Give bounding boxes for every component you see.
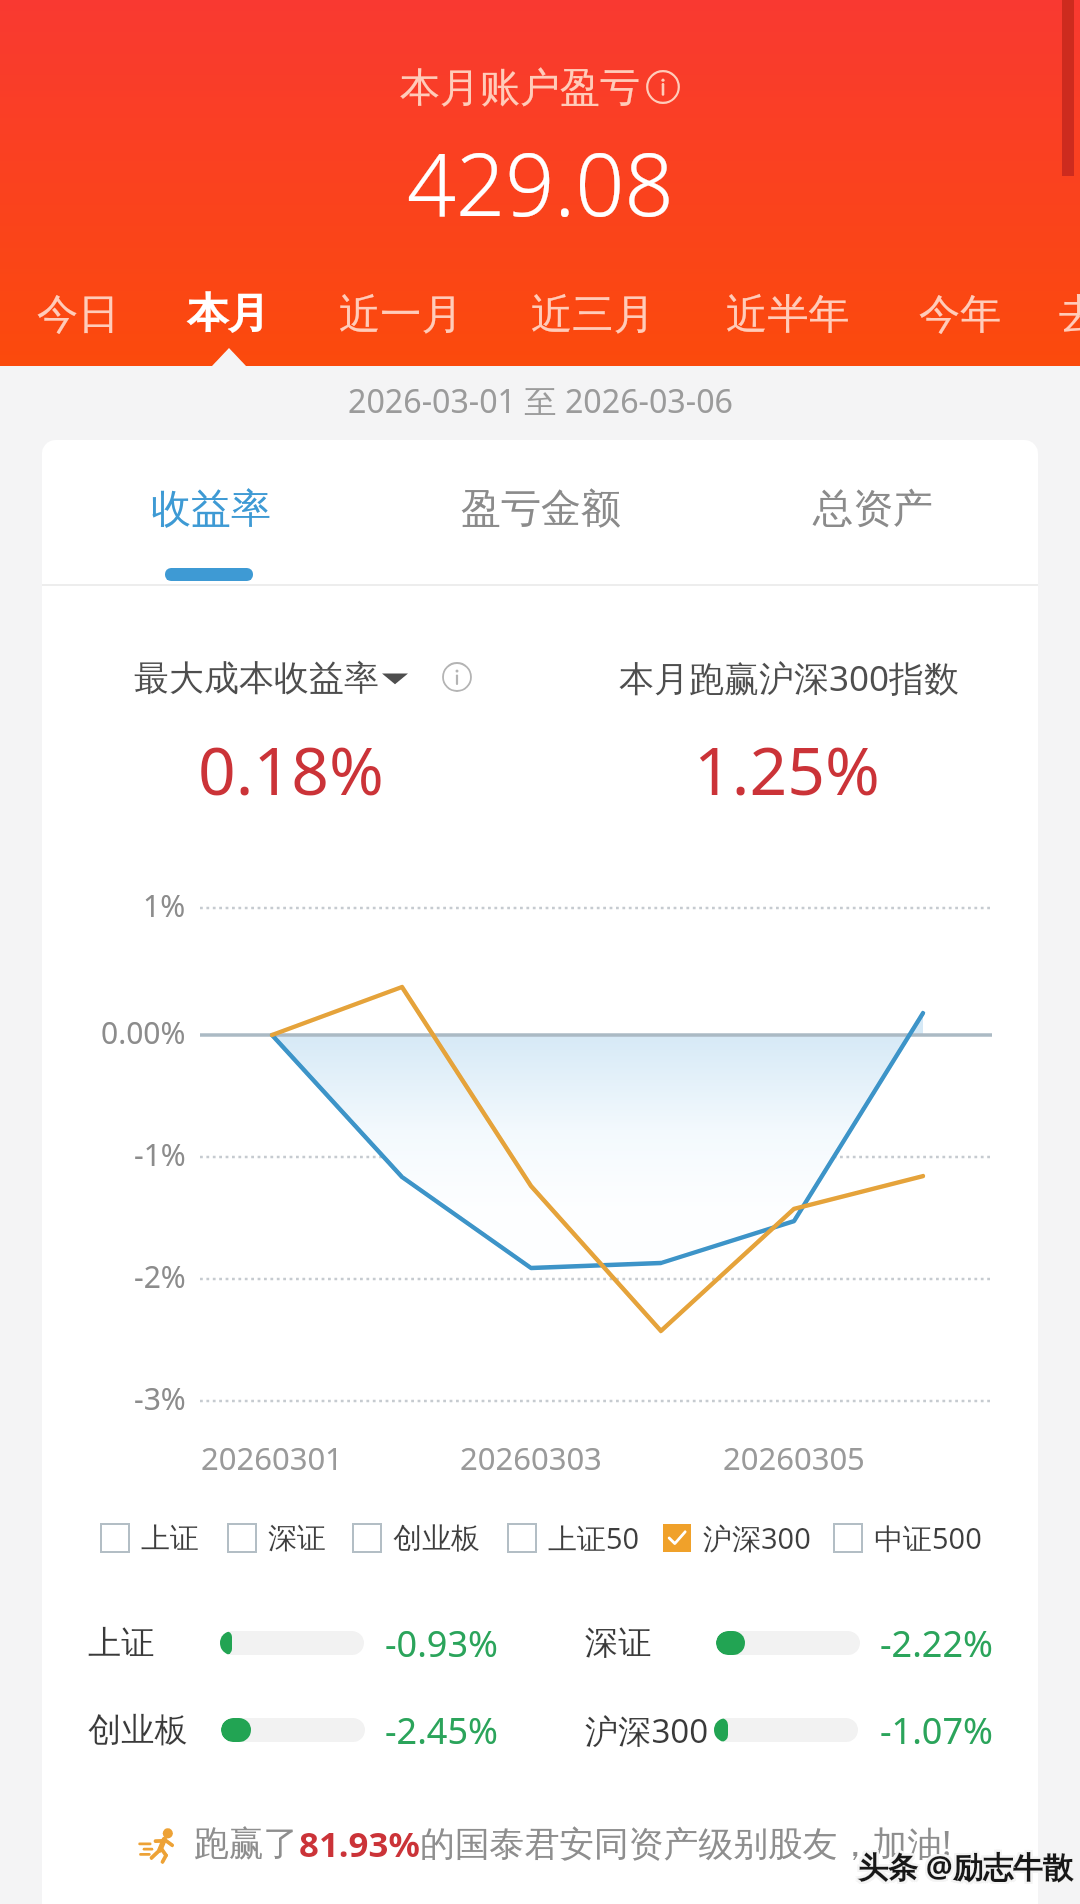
staticText: 上证: [141, 1520, 199, 1557]
button[interactable]: [80, 1607, 506, 1679]
staticText: 2026-03-01 至 2026-03-06: [348, 379, 733, 423]
button[interactable]: 深证: [228, 1508, 326, 1568]
staticText: 本月: [187, 288, 269, 340]
staticText: 最大成本收益率: [134, 656, 379, 700]
staticText: 20260301: [201, 1437, 343, 1479]
staticText: 1.25%: [694, 724, 880, 800]
button[interactable]: 上证: [101, 1508, 199, 1568]
staticText: 今日: [37, 288, 120, 340]
button[interactable]: 沪深300: [663, 1508, 811, 1568]
staticText: -2.22%: [880, 1619, 993, 1668]
staticText: 近一月: [339, 288, 463, 340]
staticText: 1%: [143, 885, 186, 926]
staticText: 头条 @励志牛散: [856, 1846, 1071, 1887]
button[interactable]: 0.18%: [171, 724, 411, 800]
staticText: -2%: [134, 1256, 186, 1297]
staticText: 今年: [919, 288, 1002, 340]
staticText: 深证: [585, 1622, 652, 1664]
button[interactable]: [577, 1694, 1001, 1766]
button[interactable]: 近半年: [714, 270, 862, 358]
button[interactable]: 盈亏金额: [431, 440, 651, 576]
button[interactable]: 中证500: [834, 1508, 982, 1568]
staticText: 头条 @励志牛散: [858, 1844, 1073, 1885]
staticText: 创业板: [88, 1709, 188, 1751]
staticText: 20260305: [723, 1437, 865, 1479]
staticText: -1%: [134, 1134, 186, 1175]
staticText: -0.93%: [385, 1619, 498, 1668]
button[interactable]: [577, 1607, 1001, 1679]
staticText: 20260303: [460, 1437, 602, 1479]
staticText: 去: [1059, 288, 1080, 340]
staticText: 本月账户盈亏: [400, 62, 640, 112]
staticText: 0.18%: [198, 724, 384, 800]
staticText: -1.07%: [880, 1706, 993, 1755]
button[interactable]: 创业板: [353, 1508, 480, 1568]
staticText: 81.93%: [299, 1820, 420, 1867]
button[interactable]: 今年: [906, 270, 1014, 358]
staticText: 总资产: [813, 483, 933, 533]
button[interactable]: 总资产: [763, 440, 983, 576]
staticText: 创业板: [393, 1520, 480, 1557]
button[interactable]: 1.25%: [667, 724, 907, 800]
staticText: 跑赢了: [194, 1821, 299, 1865]
button[interactable]: 最大成本收益率: [134, 656, 409, 700]
staticText: 头条 @励志牛散: [856, 1848, 1071, 1889]
staticText: 上证: [88, 1622, 155, 1664]
button[interactable]: 收益率: [101, 440, 321, 576]
staticText: 头条 @励志牛散: [860, 1844, 1075, 1885]
button[interactable]: 近一月: [327, 270, 475, 358]
staticText: 429.08: [407, 124, 674, 241]
staticText: -2.45%: [385, 1706, 498, 1755]
staticText: 近半年: [726, 288, 850, 340]
button[interactable]: 说明: [646, 70, 680, 104]
staticText: 盈亏金额: [461, 483, 621, 533]
staticText: 头条 @励志牛散: [860, 1848, 1075, 1889]
button[interactable]: 上证50: [508, 1508, 640, 1568]
staticText: 头条 @励志牛散: [858, 1848, 1073, 1889]
staticText: 中证500: [874, 1518, 982, 1558]
staticText: 头条 @励志牛散: [858, 1846, 1073, 1887]
button[interactable]: 本月: [172, 270, 284, 358]
staticText: 沪深300: [703, 1518, 811, 1558]
staticText: 本月跑赢沪深300指数: [619, 654, 960, 702]
staticText: 的国泰君安同资产级别股友，加油!: [420, 1819, 952, 1867]
button[interactable]: 近三月: [519, 270, 667, 358]
button[interactable]: 说明: [442, 662, 472, 692]
staticText: 头条 @励志牛散: [860, 1846, 1075, 1887]
staticText: -3%: [134, 1378, 186, 1419]
staticText: 0.00%: [101, 1012, 186, 1053]
staticText: 头条 @励志牛散: [856, 1844, 1071, 1885]
staticText: 近三月: [531, 288, 655, 340]
button[interactable]: 今日: [24, 270, 132, 358]
button[interactable]: 去: [1046, 270, 1080, 358]
staticText: 沪深300: [585, 1708, 709, 1753]
button[interactable]: 跑赢了: [137, 1812, 952, 1874]
staticText: 上证50: [548, 1518, 640, 1558]
button[interactable]: [80, 1694, 506, 1766]
staticText: 收益率: [151, 483, 271, 533]
staticText: 深证: [268, 1520, 326, 1557]
